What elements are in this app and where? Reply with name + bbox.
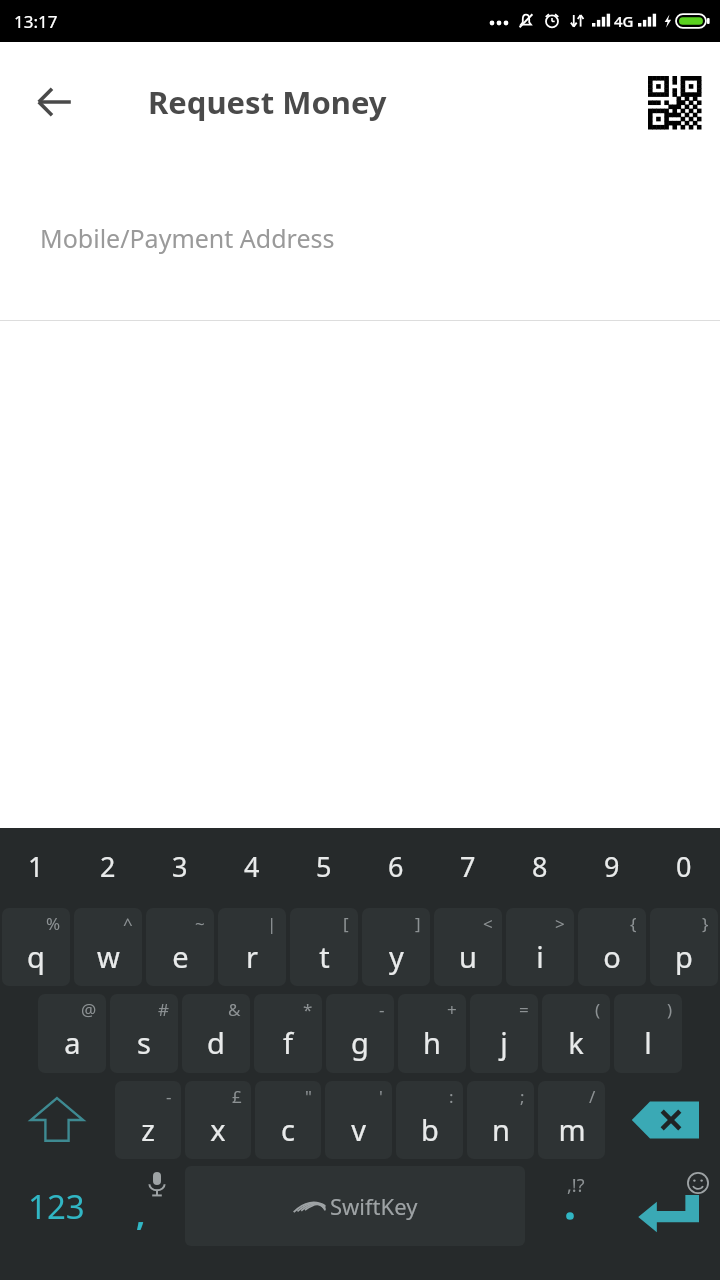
button[interactable]: 5 [288,828,360,904]
staticText: a [64,1023,81,1062]
staticText: t [319,937,330,976]
staticText: 4 [244,848,260,885]
button[interactable]: * [254,994,322,1073]
button[interactable]: 6 [360,828,432,904]
button[interactable]: ) [614,994,682,1073]
staticText: < [483,912,493,935]
button[interactable]: 9 [576,828,648,904]
staticText: v [351,1110,366,1149]
staticText: k [568,1023,584,1062]
staticText: = [519,998,529,1021]
staticText: * [303,998,313,1021]
staticText: q [27,937,45,976]
staticText: w [97,937,120,976]
staticText: 9 [604,848,620,885]
staticText: Request Money [148,81,387,123]
staticText: l [644,1023,652,1062]
staticText: u [459,937,477,976]
staticText: Mobile/Payment Address [40,221,335,255]
button[interactable]: 4 [216,828,288,904]
staticText: r [246,937,258,976]
staticText: h [423,1023,441,1062]
button[interactable]: - [326,994,394,1073]
button[interactable]: { [578,908,646,986]
staticText: 2 [100,848,116,885]
button[interactable]: 7 [432,828,504,904]
button[interactable]: , [113,1163,185,1249]
staticText: { [630,912,637,935]
staticText: 123 [28,1184,85,1229]
button[interactable]: Backspace [607,1077,720,1163]
staticText: p [675,937,693,976]
button[interactable]: ~ [146,908,214,986]
button[interactable]: + [398,994,466,1073]
staticText: ,!? [567,1173,585,1198]
staticText: y [389,937,404,976]
staticText: @ [81,998,97,1021]
staticText: z [141,1110,155,1149]
staticText: - [166,1085,172,1108]
button[interactable]: % [2,908,70,986]
staticText: g [351,1023,369,1062]
staticText: : [449,1085,454,1108]
button[interactable]: 1 [0,828,72,904]
button[interactable]: 8 [504,828,576,904]
staticText: f [283,1023,293,1062]
staticText: [ [343,912,349,935]
staticText: / [589,1085,596,1108]
button[interactable]: & [182,994,250,1073]
button[interactable]: Shift [0,1077,113,1163]
button[interactable]: Enter [615,1163,720,1249]
button[interactable]: ^ [74,908,142,986]
button[interactable]: " [255,1081,321,1159]
button[interactable]: Back [18,66,90,138]
staticText: ) [667,998,673,1021]
button[interactable]: = [470,994,538,1073]
staticText: " [305,1085,312,1108]
button[interactable]: 123 [0,1163,113,1249]
staticText: SwiftKey [330,1191,418,1221]
staticText: c [281,1110,295,1149]
button[interactable]: / [538,1081,605,1159]
staticText: 13:17 [14,10,58,33]
button[interactable]: 3 [144,828,216,904]
button[interactable]: @ [38,994,106,1073]
button[interactable]: [ [290,908,358,986]
staticText: ' [379,1085,383,1108]
staticText: 8 [532,848,548,885]
button[interactable]: ,!? [525,1163,615,1249]
staticText: m [558,1110,586,1149]
button[interactable]: ] [362,908,430,986]
button[interactable]: < [434,908,502,986]
button[interactable]: £ [185,1081,251,1159]
staticText: s [137,1023,151,1062]
button[interactable]: Scan QR code [640,68,708,136]
button[interactable]: | [218,908,286,986]
staticText: % [46,912,61,935]
staticText: b [421,1110,439,1149]
button[interactable]: ' [325,1081,392,1159]
staticText: ] [415,912,421,935]
staticText: £ [232,1085,242,1108]
button[interactable]: # [110,994,178,1073]
button[interactable]: Space [185,1166,525,1246]
button[interactable]: 0 [648,828,720,904]
staticText: | [267,912,277,935]
staticText: 5 [316,848,332,885]
button[interactable]: > [506,908,574,986]
button[interactable]: 2 [72,828,144,904]
staticText: & [228,998,241,1021]
staticText: 4G [614,11,634,31]
staticText: ^ [123,912,133,935]
staticText: x [210,1110,226,1149]
button[interactable]: - [115,1081,181,1159]
staticText: 6 [388,848,404,885]
staticText: - [379,998,385,1021]
staticText: d [207,1023,225,1062]
staticText: + [447,998,457,1021]
button[interactable]: ; [467,1081,534,1159]
button[interactable]: ( [542,994,610,1073]
staticText: o [603,937,621,976]
button[interactable]: : [396,1081,463,1159]
button[interactable]: } [650,908,718,986]
